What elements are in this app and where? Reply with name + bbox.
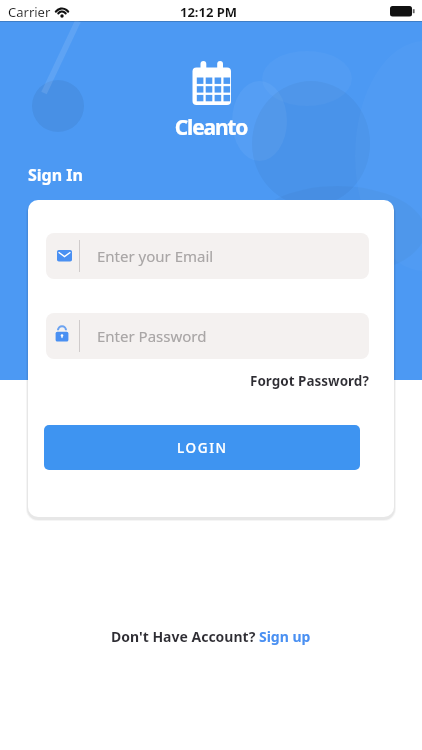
staticText: Enter Password — [97, 326, 207, 346]
staticText: LOGIN — [177, 439, 228, 457]
button[interactable]: Forgot Password? — [250, 372, 369, 390]
staticText: Enter your Email — [97, 246, 214, 266]
button[interactable]: Enter your Email — [46, 233, 369, 279]
staticText: Carrier — [8, 3, 51, 21]
staticText: Don't Have Account? Sign up — [111, 627, 311, 646]
staticText: Forgot Password? — [250, 372, 369, 390]
button[interactable]: Don't Have Account? Sign up — [0, 627, 422, 646]
button[interactable]: LOGIN — [44, 425, 360, 470]
button[interactable]: Enter Password — [46, 313, 369, 359]
staticText: 12:12 PM — [0, 3, 417, 21]
staticText: Cleanto — [0, 113, 422, 142]
staticText: Sign In — [28, 164, 83, 186]
